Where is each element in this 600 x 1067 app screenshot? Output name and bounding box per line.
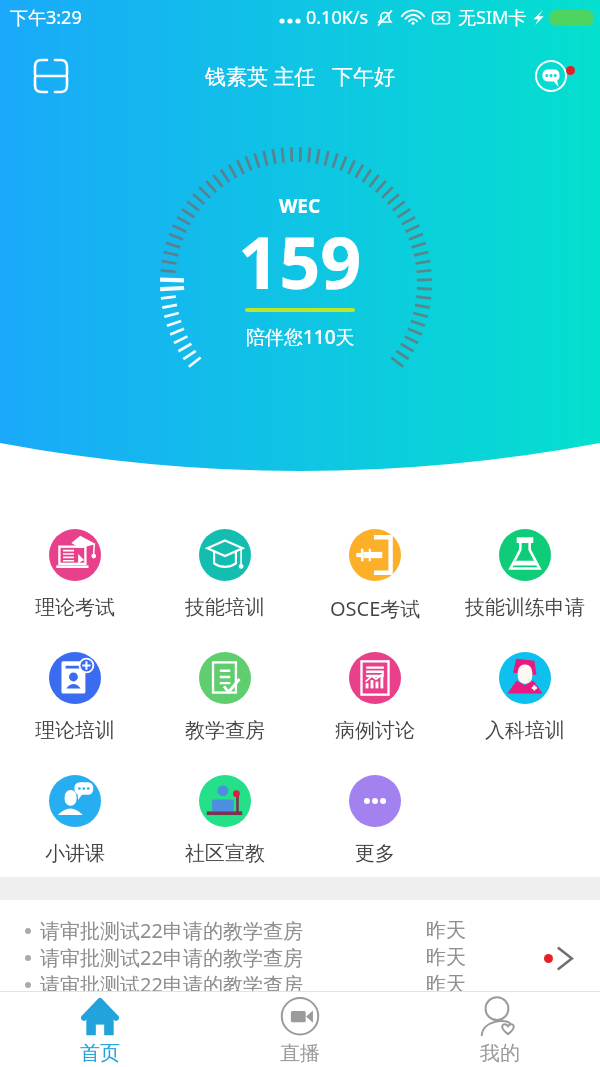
staticText: 我的	[480, 1041, 520, 1066]
button[interactable]: 技能培训	[150, 527, 300, 650]
staticText: 159	[238, 212, 362, 310]
button[interactable]: 技能训练申请	[450, 527, 600, 650]
staticText: 昨天	[426, 972, 466, 997]
button[interactable]: 请审批测试22申请的教学查房	[0, 900, 600, 991]
staticText: 直播	[280, 1041, 320, 1066]
staticText: 下午3:29	[10, 5, 82, 30]
button[interactable]: 小讲课	[0, 773, 150, 896]
staticText: 理论培训	[35, 718, 115, 743]
button[interactable]: 理论培训	[0, 650, 150, 773]
staticText: 教学查房	[185, 718, 265, 743]
button[interactable]: 首页	[0, 991, 200, 1067]
button[interactable]: 入科培训	[450, 650, 600, 773]
staticText: 小讲课	[45, 841, 105, 866]
staticText: OSCE考试	[330, 595, 421, 622]
staticText: 理论考试	[35, 595, 115, 620]
staticText: 请审批测试22申请的教学查房	[40, 944, 303, 971]
button[interactable]: Scan QR code	[34, 59, 82, 93]
staticText: 钱素英 主任	[205, 62, 316, 91]
button[interactable]: 更多	[300, 773, 450, 896]
button[interactable]: OSCE考试	[300, 527, 450, 650]
staticText: 昨天	[426, 945, 466, 970]
staticText: 请审批测试22申请的教学查房	[40, 971, 303, 998]
button[interactable]: 教学查房	[150, 650, 300, 773]
button[interactable]: 社区宣教	[150, 773, 300, 896]
button[interactable]: 直播	[200, 991, 400, 1067]
staticText: 更多	[355, 841, 395, 866]
button[interactable]: 理论考试	[0, 527, 150, 650]
staticText: WEC	[279, 193, 321, 219]
staticText: 请审批测试22申请的教学查房	[40, 917, 303, 944]
button[interactable]: 病例讨论	[300, 650, 450, 773]
staticText: 0.10K/s	[306, 5, 369, 30]
staticText: 技能培训	[185, 595, 265, 620]
staticText: 陪伴您110天	[246, 324, 355, 350]
staticText: 首页	[80, 1041, 120, 1066]
staticText: 下午好	[332, 64, 395, 90]
button[interactable]: 我的	[400, 991, 600, 1067]
staticText: 无SIM卡	[458, 5, 527, 30]
staticText: 昨天	[426, 918, 466, 943]
staticText: 病例讨论	[335, 718, 415, 743]
staticText: 社区宣教	[185, 841, 265, 866]
staticText: 入科培训	[485, 718, 565, 743]
button[interactable]: Messages	[534, 59, 578, 93]
staticText: 技能训练申请	[465, 595, 585, 620]
